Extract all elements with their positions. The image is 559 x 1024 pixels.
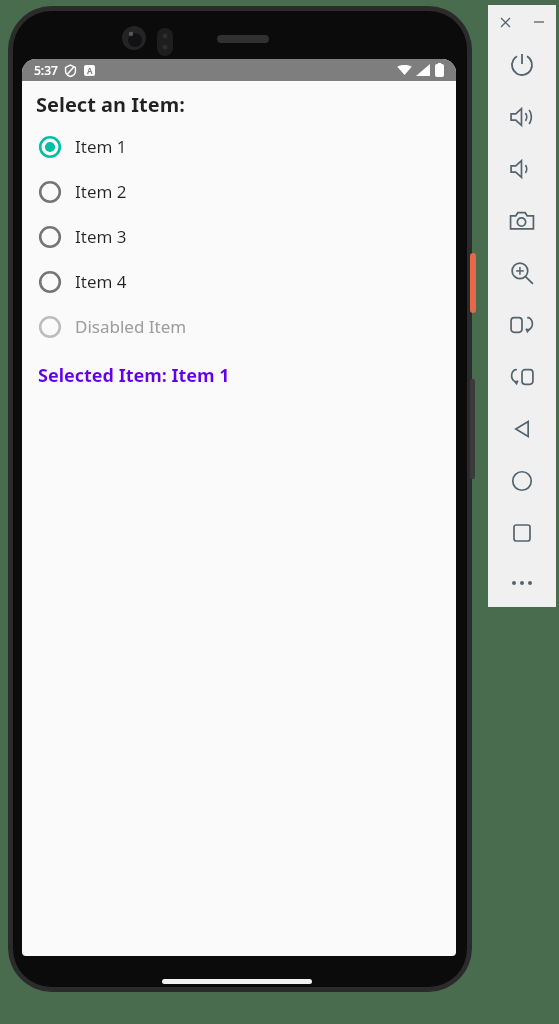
button[interactable]: Minimize [529, 12, 549, 32]
staticText: A [87, 65, 93, 76]
button: Disabled Item [36, 304, 442, 349]
button[interactable]: Rotate right [488, 351, 556, 403]
staticText: Disabled Item [75, 315, 187, 338]
button[interactable]: Home [488, 455, 556, 507]
button[interactable]: Back [488, 403, 556, 455]
button[interactable]: Power [488, 39, 556, 91]
button[interactable]: Item 1 [36, 124, 442, 169]
button[interactable]: Take screenshot [488, 195, 556, 247]
staticText: Select an Item: [36, 91, 185, 118]
button[interactable]: Item 4 [36, 259, 442, 304]
button[interactable]: Overview [488, 507, 556, 559]
button[interactable]: Zoom [488, 247, 556, 299]
staticText: Selected Item: Item 1 [38, 363, 230, 388]
staticText: Item 3 [75, 225, 127, 248]
button[interactable]: Item 2 [36, 169, 442, 214]
staticText: Item 2 [75, 180, 127, 203]
button[interactable]: Volume up [488, 91, 556, 143]
button[interactable]: Item 3 [36, 214, 442, 259]
button[interactable]: Volume down [488, 143, 556, 195]
button[interactable]: Rotate left [488, 299, 556, 351]
staticText: 5:37 [34, 62, 58, 78]
button[interactable]: Close [495, 12, 515, 32]
staticText: Item 4 [75, 270, 127, 293]
button[interactable]: More [488, 559, 556, 607]
staticText: Item 1 [75, 135, 127, 158]
